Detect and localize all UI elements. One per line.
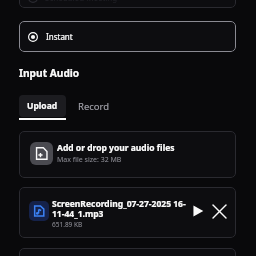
- staticText: Scheduled Meeting: [45, 0, 118, 3]
- staticText: Add or drop your audio files: [57, 142, 175, 154]
- button[interactable]: Upload: [19, 95, 66, 117]
- button[interactable]: Play: [187, 200, 209, 222]
- button[interactable]: Add or drop your audio files: [19, 131, 236, 178]
- button[interactable]: Instant: [19, 21, 236, 52]
- staticText: Upload: [27, 100, 58, 112]
- staticText: ScreenRecording_07-27-2025 16- 11-44_1.m…: [52, 198, 186, 219]
- staticText: Instant: [46, 31, 73, 42]
- staticText: Max file size: 32 MB: [57, 155, 122, 165]
- button[interactable]: ScreenRecording_07-27-2025 16- 11-44_1.m…: [19, 187, 236, 238]
- button[interactable]: Remove: [208, 200, 230, 222]
- button[interactable]: Record: [70, 95, 117, 117]
- staticText: 651.89 KB: [52, 220, 83, 229]
- button[interactable]: [19, 248, 236, 256]
- staticText: Input Audio: [19, 66, 80, 80]
- staticText: Record: [78, 100, 110, 113]
- button[interactable]: Scheduled Meeting: [19, 0, 236, 8]
